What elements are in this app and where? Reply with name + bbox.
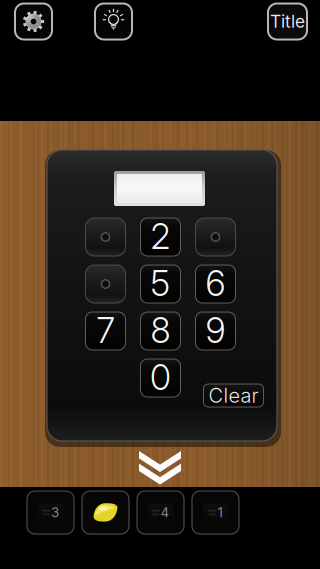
staticText: Clear bbox=[208, 383, 258, 408]
button[interactable]: 2 bbox=[140, 218, 180, 256]
staticText: Title bbox=[270, 11, 305, 32]
button[interactable]: Hidden key bbox=[85, 265, 125, 303]
button[interactable]: 0 bbox=[140, 359, 180, 397]
button[interactable]: Lemon bbox=[82, 491, 129, 534]
staticText: 2 bbox=[150, 215, 170, 257]
button[interactable]: Title bbox=[268, 3, 307, 39]
button[interactable]: 6 bbox=[195, 265, 235, 303]
button[interactable]: Clue 1 bbox=[192, 491, 239, 534]
button[interactable]: Step back bbox=[139, 451, 181, 481]
button[interactable]: Clear bbox=[203, 384, 263, 407]
button[interactable]: 5 bbox=[140, 265, 180, 303]
button[interactable]: 7 bbox=[85, 312, 125, 350]
staticText: 1 bbox=[217, 504, 222, 520]
staticText: 0 bbox=[150, 356, 171, 398]
staticText: 9 bbox=[205, 309, 225, 351]
button[interactable]: Clue 3 bbox=[27, 491, 74, 534]
staticText: 3 bbox=[51, 504, 59, 520]
button[interactable]: Hint bbox=[95, 3, 132, 39]
staticText: 4 bbox=[160, 504, 169, 520]
button[interactable]: Clue 4 bbox=[137, 491, 184, 534]
button[interactable]: Hidden key bbox=[85, 218, 125, 256]
button[interactable]: 8 bbox=[140, 312, 180, 350]
staticText: 8 bbox=[150, 309, 170, 351]
button[interactable]: Hidden key bbox=[195, 218, 235, 256]
staticText: 7 bbox=[96, 309, 114, 351]
button[interactable]: Settings bbox=[15, 3, 52, 39]
staticText: 6 bbox=[205, 262, 225, 304]
button[interactable]: 9 bbox=[195, 312, 235, 350]
staticText: 5 bbox=[150, 262, 170, 304]
